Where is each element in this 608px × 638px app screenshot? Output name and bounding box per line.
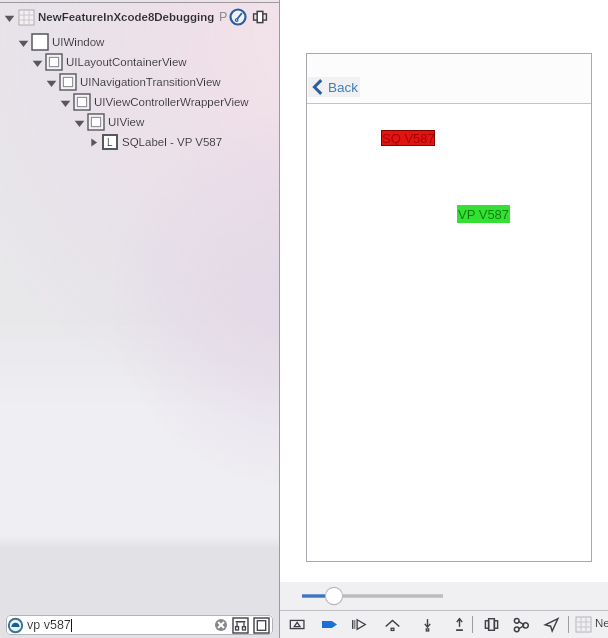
button[interactable]: Step into [419,616,436,633]
button[interactable]: Show layers [253,10,267,24]
staticText: Ne [595,617,608,630]
staticText: SQLabel - VP V587 [122,136,223,149]
staticText: UIView [108,116,145,129]
button[interactable]: L [0,132,279,152]
button[interactable]: Step over [350,616,367,633]
staticText: UILayoutContainerView [66,56,187,69]
button[interactable]: vp v587 [6,615,273,635]
button[interactable]: UIView [0,112,279,132]
button[interactable]: UINavigationTransitionView [0,72,279,92]
staticText: UIWindow [52,36,105,49]
button[interactable]: Step up [384,616,401,633]
button[interactable]: Performance gauge [229,8,247,26]
button[interactable]: NewFeatureInXcode8Debugging [0,3,279,31]
staticText: NewFeatureInXcode8Debugging [38,11,215,24]
button[interactable]: Step out [451,616,468,633]
button[interactable]: Show single view [254,618,269,633]
button[interactable]: UIWindow [0,32,279,52]
button[interactable]: Select pointer [543,616,560,633]
button[interactable]: Back [309,78,359,96]
button[interactable]: UIViewControllerWrapperView [0,92,279,112]
staticText: vp v587 [27,618,71,632]
button[interactable]: UILayoutContainerView [0,52,279,72]
button[interactable]: Depth slider [294,587,444,605]
staticText: SQ V587 [382,131,435,146]
staticText: VP V587 [458,207,510,222]
staticText: P [219,10,228,24]
button[interactable]: Clear search [215,619,227,631]
button[interactable]: Show layers [483,616,500,633]
button[interactable]: Show constraints [513,616,530,633]
staticText: Back [328,80,359,95]
button[interactable]: Show view [290,616,307,633]
button[interactable]: Show hierarchy [233,618,248,633]
staticText: UINavigationTransitionView [80,76,221,89]
button[interactable]: Continue program execution [321,616,338,633]
staticText: L [107,137,113,148]
staticText: UIViewControllerWrapperView [94,96,249,109]
